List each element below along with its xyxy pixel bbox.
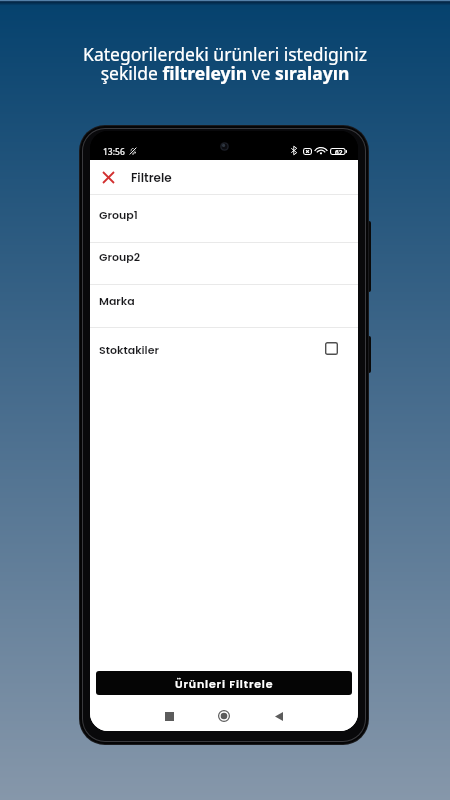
button[interactable]: Close (91, 160, 125, 194)
staticText: Stoktakiler (99, 342, 159, 356)
button[interactable]: Recents (158, 705, 180, 727)
staticText: 13:56 (103, 146, 125, 158)
staticText: Kategorilerdeki ürünleri istediginiz şek… (0, 42, 450, 85)
staticText: Group1 (99, 207, 138, 221)
button[interactable]: Stoktakiler (90, 327, 358, 370)
staticText: Ürünleri Filtrele (175, 676, 274, 691)
button[interactable]: Group1 (90, 194, 358, 242)
button[interactable]: Home (213, 705, 235, 727)
staticText: Marka (99, 293, 135, 307)
button[interactable]: Group2 (90, 242, 358, 285)
button[interactable]: Marka (90, 284, 358, 327)
staticText: Filtrele (131, 169, 172, 183)
button[interactable]: Ürünleri Filtrele (96, 671, 352, 695)
button[interactable]: Back (268, 705, 290, 727)
staticText: 62 (335, 148, 343, 157)
staticText: Group2 (99, 249, 140, 263)
